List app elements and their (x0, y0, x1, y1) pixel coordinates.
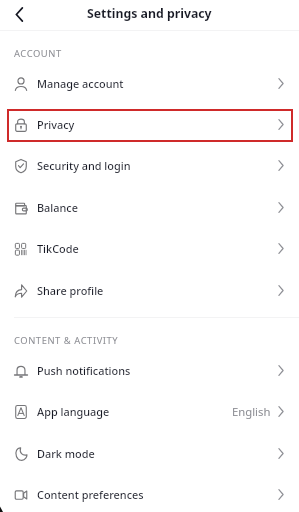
staticText: App language (37, 404, 110, 419)
staticText: ACCOUNT (14, 47, 62, 60)
button[interactable]: Balance (0, 187, 299, 228)
button[interactable]: Share profile (0, 270, 299, 311)
button[interactable]: Content preferences (0, 474, 299, 512)
button[interactable]: Back (5, 0, 33, 28)
staticText: Security and login (37, 158, 131, 173)
staticText: CONTENT & ACTIVITY (14, 334, 119, 347)
staticText: Balance (37, 200, 78, 215)
staticText: Manage account (37, 76, 124, 91)
button[interactable]: App language (0, 391, 299, 432)
button[interactable]: Push notifications (0, 350, 299, 391)
staticText: Settings and privacy (87, 5, 212, 22)
staticText: Privacy (37, 117, 75, 132)
staticText: Push notifications (37, 363, 131, 378)
button[interactable]: Dark mode (0, 433, 299, 474)
staticText: Content preferences (37, 487, 144, 502)
button[interactable]: Manage account (0, 63, 299, 104)
button[interactable]: TikCode (0, 228, 299, 269)
button[interactable]: Privacy (0, 104, 299, 145)
staticText: Share profile (37, 283, 104, 298)
button[interactable]: Security and login (0, 145, 299, 186)
staticText: English (232, 404, 271, 419)
staticText: TikCode (37, 241, 79, 256)
staticText: Dark mode (37, 446, 95, 461)
